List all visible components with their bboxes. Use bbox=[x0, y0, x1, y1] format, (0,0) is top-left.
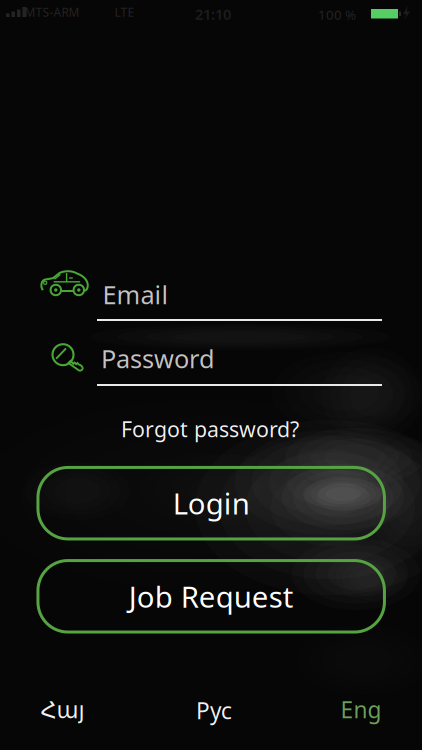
button[interactable]: Email bbox=[38, 268, 382, 322]
button[interactable]: Рус bbox=[196, 695, 232, 725]
button[interactable]: Forgot password? bbox=[121, 415, 299, 443]
staticText: Login bbox=[173, 484, 250, 523]
staticText: Հայ bbox=[40, 698, 84, 723]
button[interactable]: Login bbox=[38, 467, 384, 539]
staticText: LTE bbox=[114, 4, 134, 20]
staticText: Email bbox=[102, 278, 168, 311]
button[interactable]: Հայ bbox=[40, 698, 84, 723]
staticText: Рус bbox=[196, 695, 232, 725]
staticText: 21:10 bbox=[195, 4, 231, 24]
staticText: Password bbox=[101, 342, 215, 375]
staticText: Job Request bbox=[129, 577, 294, 616]
button[interactable]: Password bbox=[38, 336, 382, 392]
staticText: Forgot password? bbox=[121, 415, 299, 443]
button[interactable]: Eng bbox=[340, 694, 381, 724]
staticText: MTS-ARM bbox=[24, 4, 79, 20]
staticText: Eng bbox=[340, 694, 381, 724]
button[interactable]: Job Request bbox=[38, 560, 384, 632]
staticText: 100 % bbox=[318, 6, 356, 23]
